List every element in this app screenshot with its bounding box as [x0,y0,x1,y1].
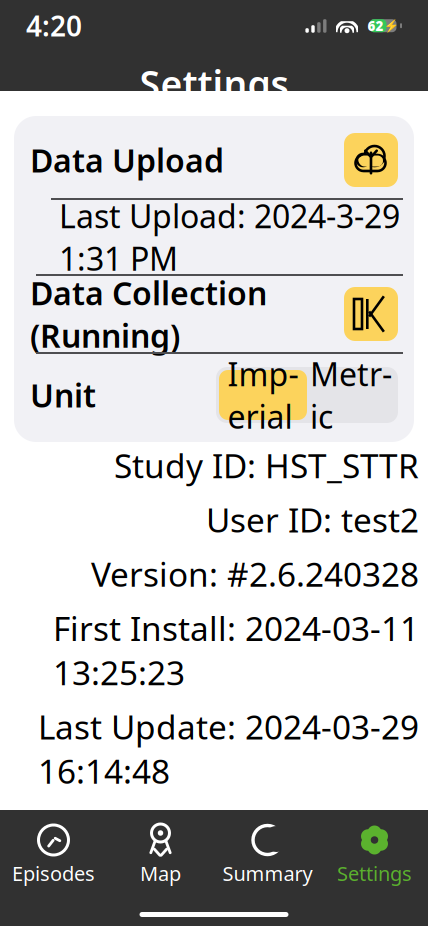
staticText: Settings [337,860,412,887]
staticText: Data Collection (Running) [30,271,267,356]
staticText: 4:20 [26,7,82,44]
staticText: Last Upload: 2024-3-29 1:31 PM [59,194,400,279]
button[interactable]: Toggle data collection [22,276,406,352]
staticText: First Install: 2024-03-11 13:25:23 [53,606,419,694]
button[interactable]: Map [107,820,214,891]
staticText: ⚡ [383,19,398,33]
button[interactable]: Episodes [0,820,107,891]
staticText: 62 [367,17,383,35]
button[interactable]: Summary [214,820,321,891]
button[interactable]: Metric [307,370,395,420]
staticText: Version: #2.6.240328 [91,552,419,596]
staticText: Imperial [227,352,298,437]
button[interactable]: Imperial [219,370,307,420]
staticText: Unit [30,374,96,416]
staticText: Episodes [12,860,95,887]
staticText: Settings [139,59,288,108]
button[interactable]: Settings [321,820,428,891]
staticText: Summary [222,860,312,887]
staticText: Data Upload [30,139,224,181]
staticText: Study ID: HST_STTR [114,443,419,487]
staticText: Map [140,860,181,887]
staticText: User ID: test2 [206,497,419,542]
staticText: Last Update: 2024-03-29 16:14:48 [38,704,419,793]
staticText: Metric [310,352,392,437]
button[interactable]: Upload data [22,122,406,198]
